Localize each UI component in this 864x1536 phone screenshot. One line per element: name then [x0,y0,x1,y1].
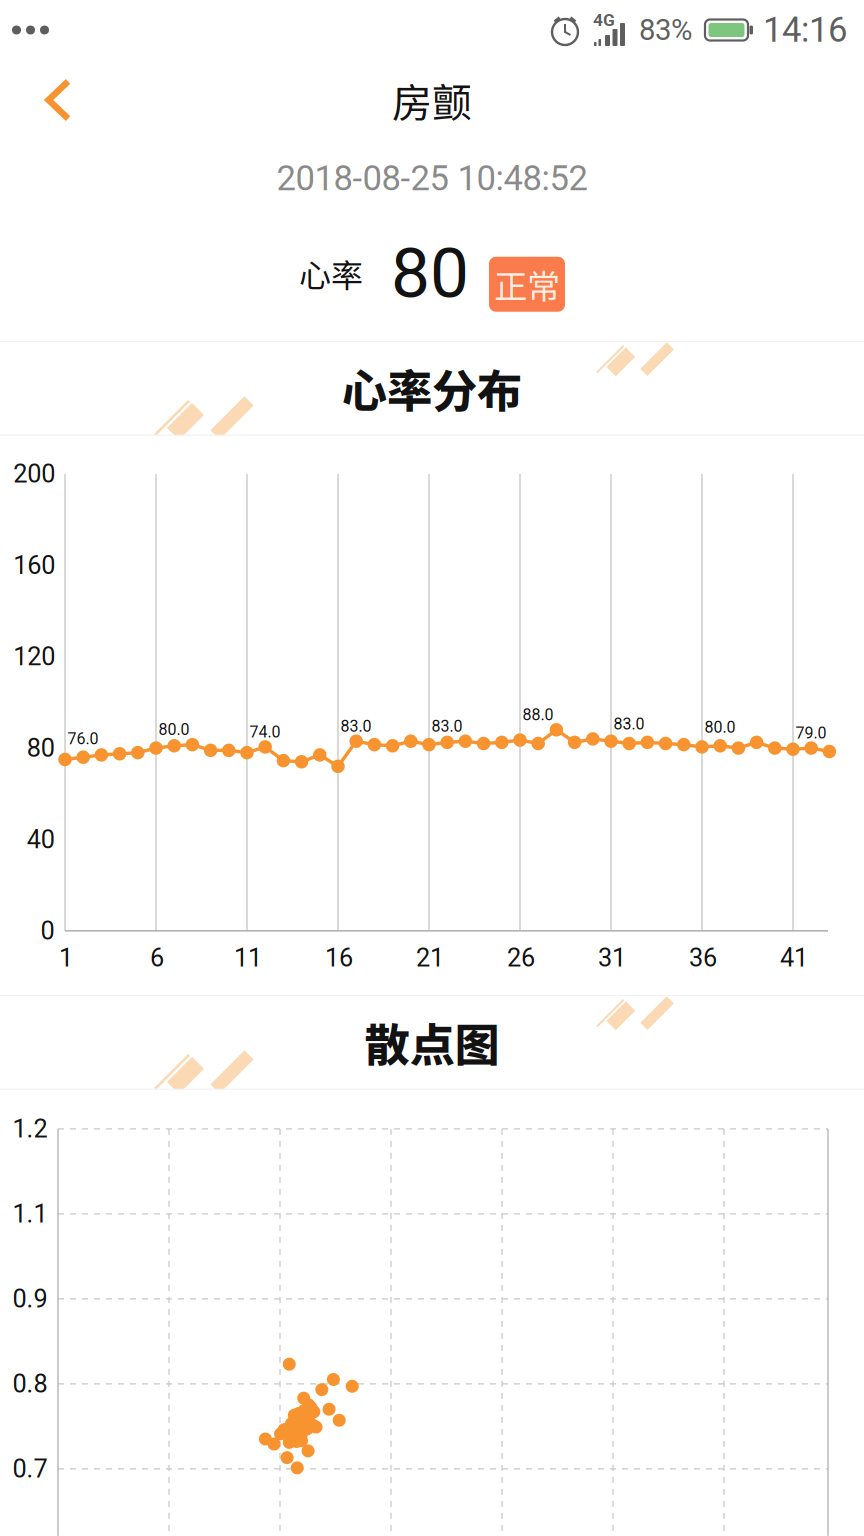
staticText: 2018-08-25 10:48:52 [276,158,587,199]
staticText: 26 [507,943,535,973]
staticText: 76.0 [67,729,98,748]
staticText: 心率 [299,250,363,296]
staticText: 83.0 [613,715,644,733]
staticText: 0 [40,916,54,946]
staticText: 36 [689,943,717,973]
staticText: 83% [639,13,692,47]
staticText: 83.0 [431,717,462,736]
staticText: 0.7 [12,1454,47,1484]
staticText: 74.0 [249,723,280,741]
staticText: 1.1 [12,1199,47,1229]
staticText: 120 [13,642,55,671]
staticText: 0.9 [12,1284,47,1314]
staticText: 21 [416,943,444,973]
staticText: 80 [391,233,469,314]
staticText: 散点图 [364,1009,499,1075]
button[interactable]: Notifications [0,13,65,46]
staticText: 4G [593,10,615,30]
staticText: 200 [13,459,55,489]
staticText: 1.2 [12,1114,47,1144]
staticText: 正常 [494,260,560,308]
staticText: 1 [59,943,73,973]
staticText: 80.0 [704,718,735,737]
staticText: 160 [13,550,55,580]
staticText: 11 [234,943,262,973]
staticText: 80.0 [158,720,189,739]
staticText: 79.0 [795,724,826,742]
staticText: 0.8 [12,1369,47,1399]
staticText: 41 [780,943,808,973]
staticText: 心率分布 [342,355,522,421]
staticText: 14:16 [763,10,847,50]
staticText: 房颤 [392,71,472,129]
staticText: 83.0 [340,717,371,736]
button[interactable]: Back [0,63,92,137]
staticText: 6 [150,943,164,973]
staticText: 40 [27,825,55,854]
staticText: 31 [598,943,626,973]
staticText: 16 [325,943,353,973]
staticText: 80 [27,733,55,763]
staticText: 88.0 [522,705,553,724]
